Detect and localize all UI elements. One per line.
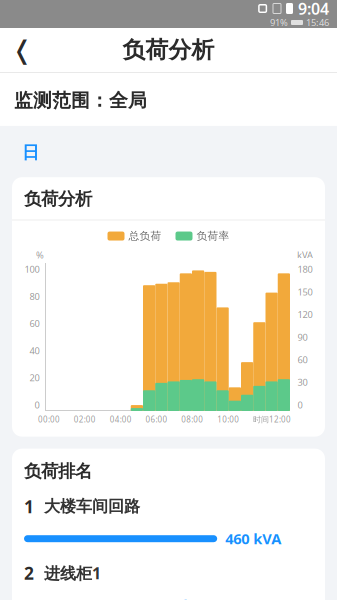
staticText: 90 [297,331,307,343]
staticText: 10:00 [217,414,239,425]
staticText: kVA [297,249,313,261]
staticText: 负荷率 [196,229,229,243]
staticText: 460 kVA [225,529,281,548]
staticText: 20 [29,371,39,384]
staticText: 02:00 [74,414,96,425]
staticText: 00:00 [38,414,60,425]
staticText: 06:00 [145,414,167,425]
button[interactable]: 日 [18,136,43,169]
button[interactable]: 2 [12,548,325,600]
staticText: 时间12:00 [253,414,291,425]
staticText: 91% [270,16,288,29]
staticText: 负荷分析 [24,188,92,209]
staticText: 大楼车间回路 [44,497,140,516]
staticText: 60 [297,353,307,366]
staticText: 总负荷 [128,229,161,243]
staticText: 08:00 [181,414,203,425]
staticText: 0 [297,399,302,411]
staticText: 日 [22,142,39,163]
button[interactable]: 1 [12,482,325,548]
staticText: 15:46 [306,16,329,29]
staticText: 40 [29,344,39,357]
staticText: ❬ [11,36,32,64]
staticText: 80 [29,290,39,302]
staticText: % [36,249,44,261]
staticText: 负荷排名 [24,461,92,482]
button[interactable]: Back [0,28,44,72]
staticText: 2 [24,561,34,584]
staticText: 150 [297,286,312,298]
staticText: 180 [297,263,312,275]
staticText: 0 [34,399,39,411]
staticText: 负荷分析 [122,36,214,64]
staticText: 9:04 [298,0,329,19]
staticText: 监测范围：全局 [14,89,147,112]
staticText: 276 kVA [155,595,211,600]
staticText: 120 [297,308,312,321]
staticText: 1 [24,495,34,518]
staticText: 进线柜1 [44,562,101,583]
staticText: 04:00 [110,414,132,425]
staticText: 60 [29,317,39,330]
staticText: 30 [297,376,307,388]
staticText: 100 [24,263,39,275]
